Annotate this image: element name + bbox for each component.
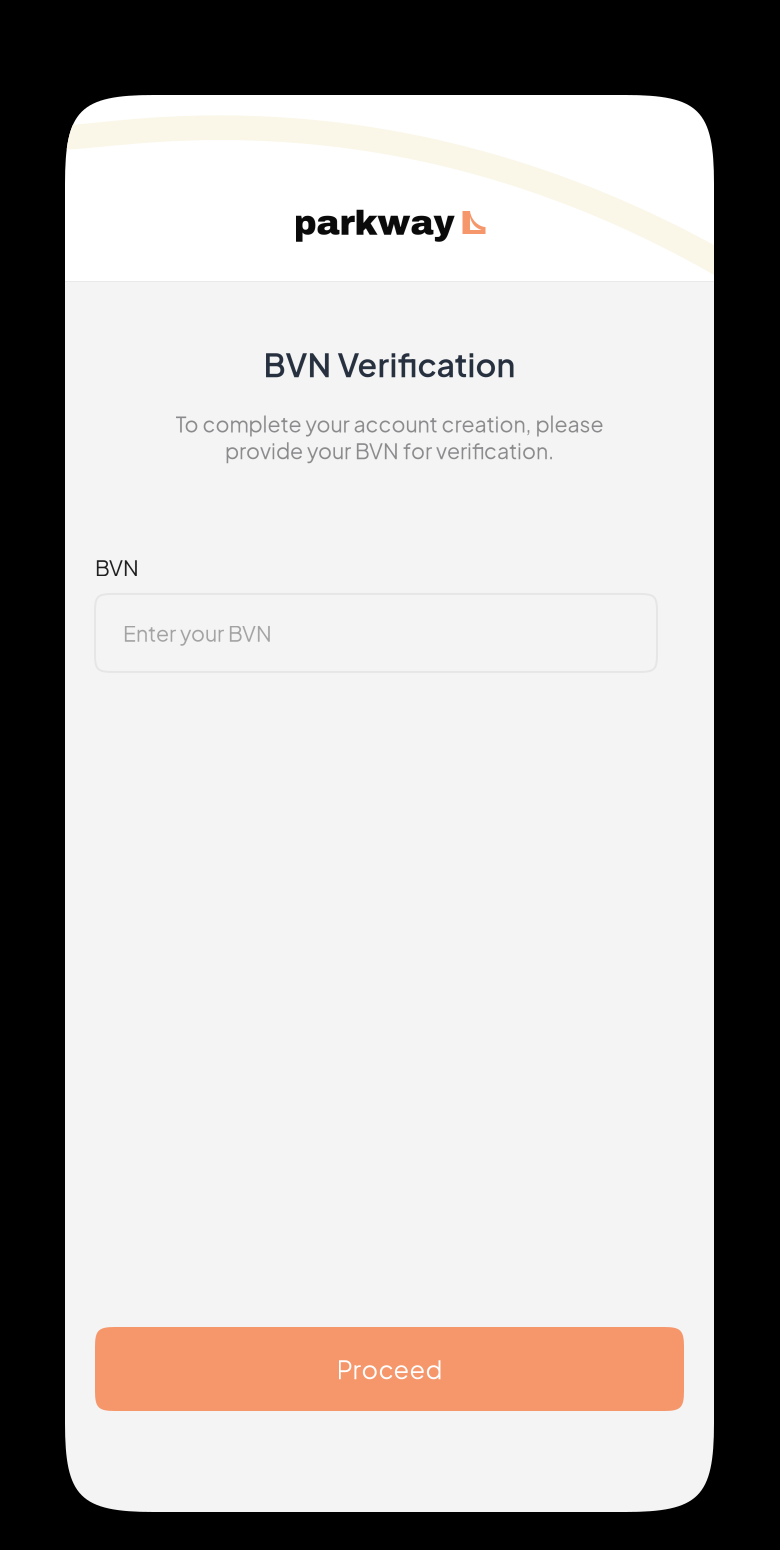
staticText: Proceed [336, 1353, 442, 1385]
button[interactable]: Proceed [95, 1327, 684, 1411]
staticText: Enter your BVN [123, 619, 272, 646]
staticText: BVN [95, 554, 139, 581]
button[interactable]: Enter your BVN [95, 594, 657, 672]
staticText: To complete your account creation, pleas… [175, 410, 603, 437]
staticText: parkway [293, 204, 454, 242]
staticText: provide your BVN for verification. [225, 437, 554, 464]
staticText: BVN Verification [263, 344, 515, 384]
